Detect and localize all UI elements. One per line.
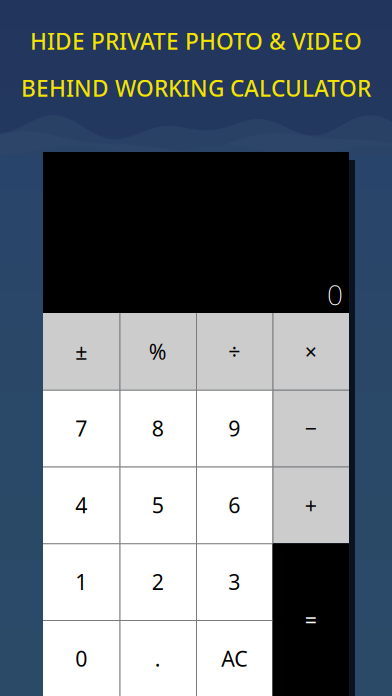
staticText: 1 [75,567,87,596]
button[interactable]: − [272,390,349,467]
button[interactable]: 6 [196,466,272,543]
button[interactable]: 4 [43,466,119,543]
staticText: BEHIND WORKING CALCULATOR [21,73,371,103]
button[interactable]: 2 [119,543,196,620]
staticText: 0 [327,276,343,313]
button[interactable]: × [272,313,349,390]
staticText: ÷ [228,337,240,365]
staticText: % [149,337,167,365]
button[interactable]: 5 [119,466,196,543]
button[interactable]: 3 [196,543,272,620]
staticText: 7 [75,414,87,442]
staticText: 9 [228,414,240,442]
staticText: ± [75,337,87,365]
staticText: 2 [152,567,164,596]
button[interactable]: ± [43,313,119,390]
staticText: . [155,644,161,672]
staticText: 3 [228,567,240,596]
staticText: = [305,606,317,634]
button[interactable]: 1 [43,543,119,620]
staticText: HIDE PRIVATE PHOTO & VIDEO [30,26,362,56]
button[interactable]: % [119,313,196,390]
button[interactable]: 0 [43,620,119,696]
staticText: + [305,491,317,519]
button[interactable]: . [119,620,196,696]
button[interactable]: ÷ [196,313,272,390]
button[interactable]: 8 [119,390,196,467]
button[interactable]: 7 [43,390,119,467]
staticText: 5 [152,491,164,519]
staticText: − [305,414,317,442]
staticText: × [305,337,317,365]
staticText: 0 [75,644,87,672]
staticText: 8 [152,414,164,442]
staticText: AC [221,644,247,672]
button[interactable]: AC [196,620,272,696]
button[interactable]: = [272,543,349,696]
staticText: 4 [75,491,87,519]
staticText: 6 [228,491,240,519]
button[interactable]: 9 [196,390,272,467]
button[interactable]: + [272,466,349,543]
